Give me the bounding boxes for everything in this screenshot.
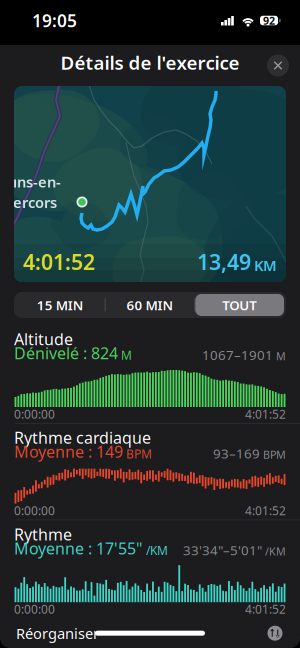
button[interactable]: 60 MIN (106, 294, 194, 316)
staticText: Dénivelé : 824 (14, 342, 118, 364)
button[interactable]: Fermer (263, 50, 293, 80)
staticText: 4:01:52 (245, 503, 286, 518)
button[interactable]: TOUT (195, 294, 284, 316)
staticText: 0:00:00 (14, 601, 55, 617)
staticText: BPM (123, 446, 152, 462)
staticText: BPM (260, 448, 286, 462)
button[interactable]: Réorganiser (264, 622, 286, 644)
staticText: 4:01:52 (245, 406, 286, 422)
staticText: KM (254, 255, 277, 275)
staticText: Altitude (14, 328, 73, 350)
staticText: 93–169 (213, 444, 260, 462)
staticText: TOUT (222, 296, 257, 314)
staticText: 15 MIN (37, 296, 84, 314)
staticText: M (118, 347, 132, 363)
staticText: Rythme cardiaque (14, 427, 151, 448)
staticText: 33'34"–5'01" (183, 541, 262, 559)
button[interactable]: Réorganiser (16, 619, 99, 647)
staticText: 60 MIN (126, 296, 173, 314)
staticText: 0:00:00 (14, 503, 55, 518)
button[interactable]: 15 MIN (16, 294, 105, 316)
staticText: Moyenne : 17'55" (14, 538, 143, 559)
staticText: ıns-en- (13, 172, 61, 191)
staticText: 19:05 (32, 9, 77, 32)
staticText: 4:01:52 (245, 601, 286, 617)
staticText: 92 (263, 13, 275, 28)
staticText: Réorganiser (16, 623, 99, 643)
staticText: 4:01:52 (23, 248, 95, 276)
staticText: /KM (143, 542, 168, 558)
staticText: 0:00:00 (14, 406, 55, 422)
staticText: 1067–1901 (202, 346, 273, 364)
staticText: Rythme (14, 524, 72, 545)
staticText: M (273, 349, 286, 363)
staticText: Détails de l'exercice (60, 50, 239, 75)
staticText: ercors (13, 192, 57, 212)
staticText: /KM (262, 544, 286, 558)
staticText: 13,49 (197, 248, 251, 276)
staticText: Moyenne : 149 (14, 441, 123, 462)
